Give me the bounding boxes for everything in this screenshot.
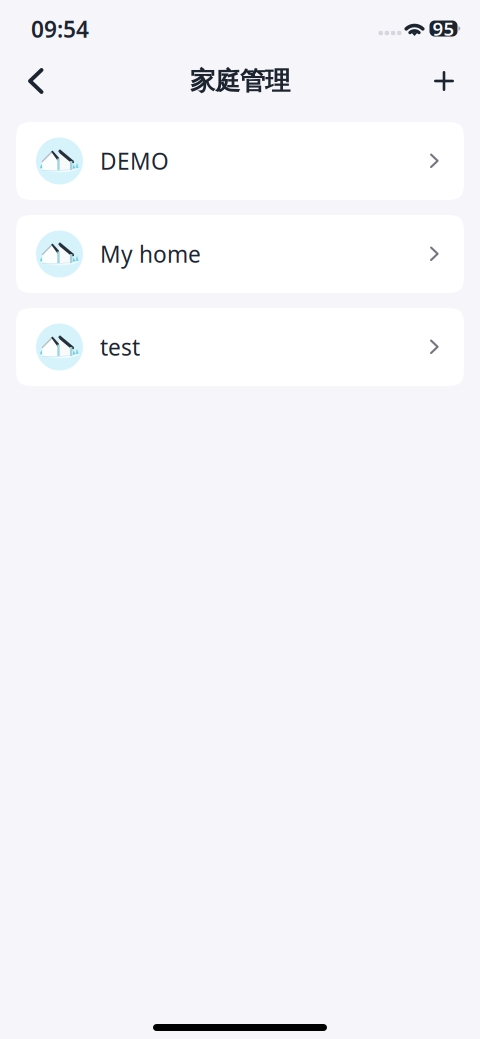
button[interactable]: DEMO xyxy=(16,122,464,200)
button[interactable]: Add home xyxy=(421,58,467,104)
staticText: 家庭管理 xyxy=(190,65,290,96)
button[interactable]: Back xyxy=(13,58,59,104)
staticText: DEMO xyxy=(100,146,169,176)
button[interactable]: My home xyxy=(16,215,464,293)
staticText: 95 xyxy=(432,16,454,41)
button[interactable]: test xyxy=(16,308,464,386)
staticText: My home xyxy=(100,239,201,269)
staticText: test xyxy=(100,332,140,362)
staticText: 09:54 xyxy=(31,14,89,44)
